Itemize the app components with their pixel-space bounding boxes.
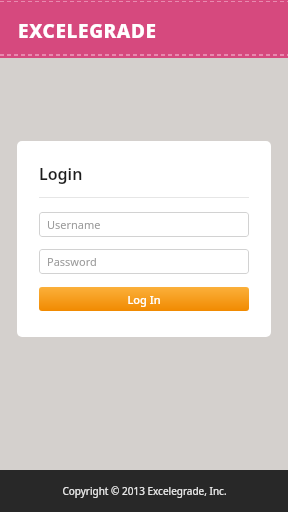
staticText: EXCELEGRADE [18, 18, 157, 44]
button[interactable]: Password [39, 249, 249, 274]
staticText: Username [47, 217, 101, 232]
button[interactable]: Log In [39, 287, 249, 311]
staticText: Log In [127, 292, 161, 307]
staticText: Copyright © 2013 Excelegrade, Inc. [62, 484, 227, 498]
button[interactable]: Username [39, 212, 249, 237]
staticText: Login [39, 163, 83, 185]
staticText: Password [47, 254, 97, 269]
